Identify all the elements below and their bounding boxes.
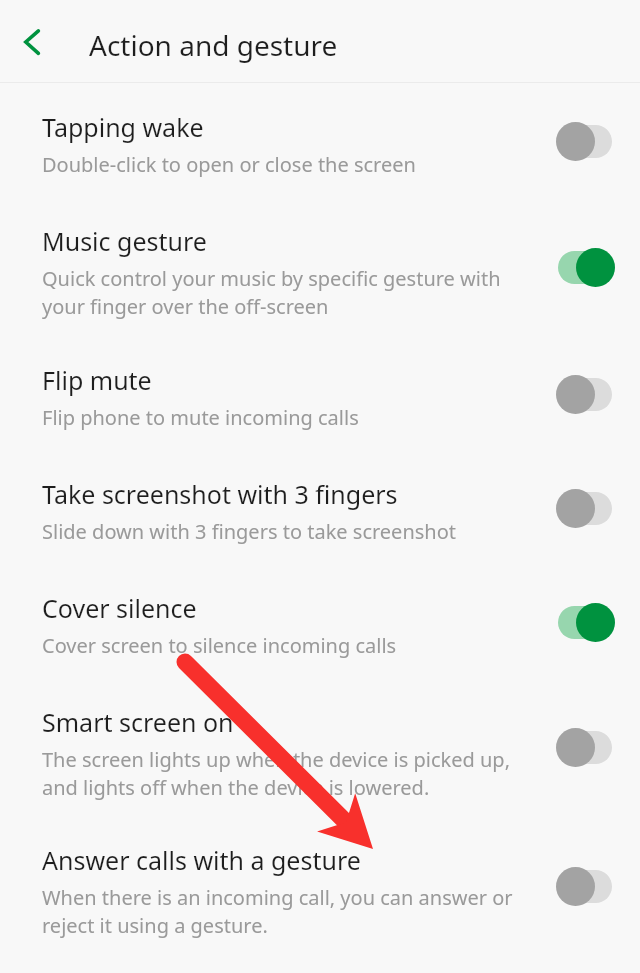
staticText: Smart screen on [42, 705, 234, 739]
button[interactable]: Back [10, 19, 56, 65]
staticText: Quick control your music by specific ges… [42, 265, 516, 320]
staticText: Cover screen to silence incoming calls [42, 632, 397, 659]
staticText: When there is an incoming call, you can … [42, 884, 516, 939]
staticText: Double-click to open or close the screen [42, 151, 416, 178]
staticText: Slide down with 3 fingers to take screen… [42, 518, 457, 545]
staticText: The screen lights up when the device is … [42, 746, 516, 801]
staticText: Answer calls with a gesture [42, 843, 361, 877]
button[interactable]: Music gesture toggle [530, 246, 640, 288]
staticText: Flip phone to mute incoming calls [42, 404, 359, 431]
button[interactable]: Flip mute toggle [530, 373, 640, 415]
staticText: Action and gesture [89, 26, 338, 64]
button[interactable]: Cover silence toggle [530, 601, 640, 643]
button[interactable]: Take screenshot with 3 fingers toggle [530, 487, 640, 529]
staticText: Flip mute [42, 363, 152, 397]
button[interactable]: Tapping wake [0, 110, 640, 178]
button[interactable]: Answer calls with a gesture [0, 843, 640, 939]
staticText: Tapping wake [42, 110, 204, 144]
staticText: Take screenshot with 3 fingers [42, 477, 398, 511]
button[interactable]: Smart screen on [0, 705, 640, 801]
button[interactable]: Take screenshot with 3 fingers [0, 477, 640, 545]
button[interactable]: Flip mute [0, 363, 640, 431]
button[interactable]: Music gesture [0, 224, 640, 320]
staticText: Cover silence [42, 591, 197, 625]
button[interactable]: Tapping wake toggle [530, 120, 640, 162]
button[interactable]: Smart screen on toggle [530, 726, 640, 768]
button[interactable]: Answer calls with a gesture toggle [530, 865, 640, 907]
staticText: Music gesture [42, 224, 207, 258]
button[interactable]: Cover silence [0, 591, 640, 659]
